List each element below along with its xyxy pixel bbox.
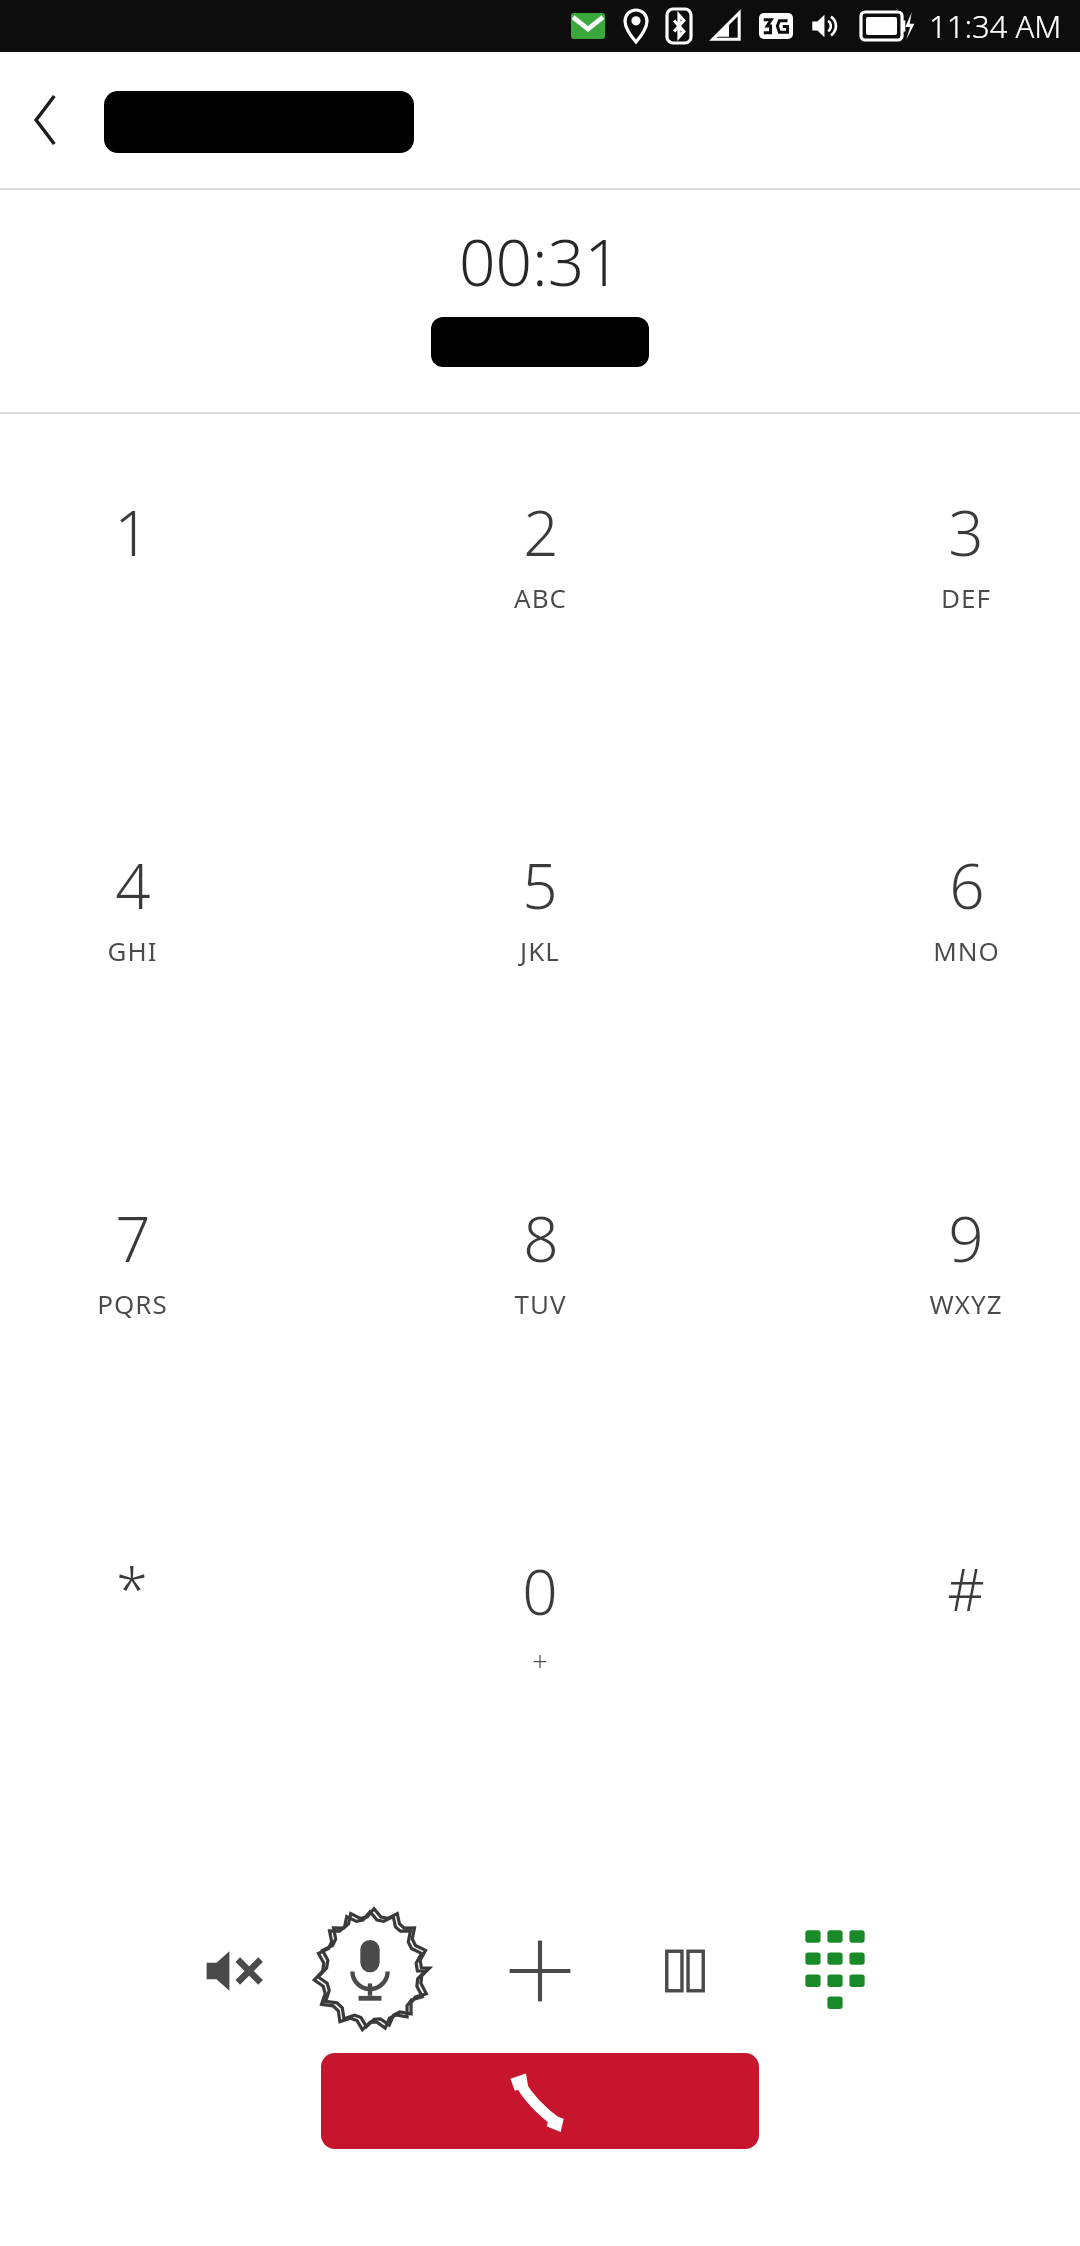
button[interactable]: Back [0, 60, 92, 180]
button[interactable]: Mute [300, 1901, 440, 2041]
staticText: + [532, 1641, 548, 1679]
staticText: 6 [949, 843, 985, 927]
staticText: WXYZ [929, 1286, 1003, 1321]
staticText: JKL [520, 933, 560, 968]
button[interactable]: 0 [360, 1543, 720, 1896]
staticText: MNO [933, 933, 1000, 968]
button[interactable]: # [720, 1543, 1080, 1896]
staticText: 3 [948, 490, 984, 574]
button[interactable]: End call [321, 2053, 759, 2149]
staticText: 5 [522, 843, 558, 927]
staticText: ABC [514, 580, 567, 615]
staticText: 00:31 [459, 218, 621, 305]
button[interactable]: 4 [0, 837, 360, 1190]
button[interactable]: Add call [485, 1916, 595, 2026]
staticText: 7 [115, 1196, 151, 1280]
button[interactable]: 7 [0, 1190, 360, 1543]
staticText: GHI [107, 933, 158, 968]
button[interactable]: 8 [360, 1190, 720, 1543]
button[interactable]: Show keypad [780, 1916, 890, 2026]
button[interactable]: Hold [630, 1916, 740, 2026]
button[interactable]: 2 [360, 484, 720, 837]
button[interactable]: 1 [0, 484, 360, 837]
button[interactable]: Speaker off [182, 1916, 292, 2026]
staticText: 2 [523, 490, 559, 574]
staticText: 8 [523, 1196, 559, 1280]
button[interactable]: * [0, 1543, 360, 1896]
staticText: 1 [114, 490, 150, 574]
staticText: 4 [115, 843, 151, 927]
staticText: 9 [948, 1196, 984, 1280]
staticText: PQRS [97, 1286, 168, 1321]
staticText: # [947, 1549, 985, 1628]
button[interactable]: 6 [720, 837, 1080, 1190]
button[interactable]: 3 [720, 484, 1080, 837]
staticText: DEF [941, 580, 991, 615]
staticText: TUV [514, 1286, 567, 1321]
button[interactable]: 9 [720, 1190, 1080, 1543]
button[interactable]: 5 [360, 837, 720, 1190]
staticText: * [116, 1549, 148, 1628]
staticText: 0 [522, 1549, 558, 1633]
staticText: 11:34 AM [929, 5, 1062, 47]
